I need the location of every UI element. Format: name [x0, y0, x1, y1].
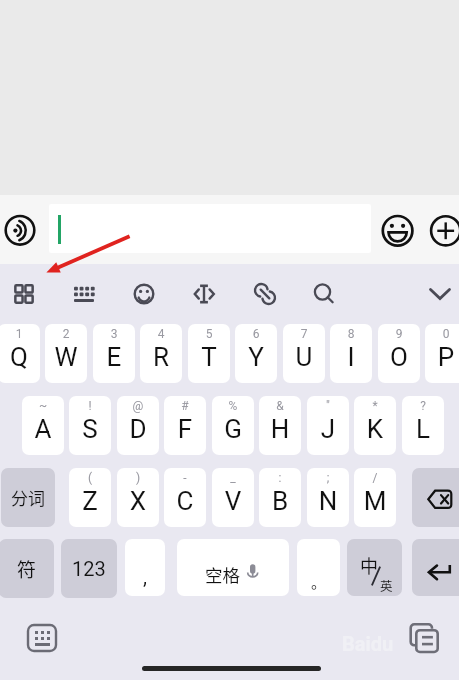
staticText: I	[330, 342, 372, 376]
button[interactable]: 6	[235, 324, 277, 383]
button[interactable]	[49, 204, 371, 253]
button[interactable]: &	[259, 396, 301, 455]
button[interactable]: Keyboard layouts	[4, 274, 44, 314]
staticText: C	[164, 486, 206, 520]
button[interactable]: Emoji	[379, 212, 417, 250]
staticText: R	[140, 342, 182, 376]
staticText: *	[354, 399, 396, 415]
button[interactable]: 中	[347, 539, 402, 596]
staticText: )	[117, 471, 159, 487]
staticText: ;	[307, 471, 349, 487]
staticText: L	[402, 414, 444, 448]
button[interactable]: Switch keyboard	[24, 621, 60, 655]
staticText: 4	[140, 327, 182, 343]
staticText: 5	[188, 327, 230, 343]
button[interactable]: 4	[140, 324, 182, 383]
staticText: (	[69, 471, 111, 487]
staticText: U	[283, 342, 325, 376]
staticText: Baidu	[342, 632, 394, 655]
staticText: &	[259, 399, 301, 415]
staticText: A	[22, 414, 64, 448]
staticText: 3	[93, 327, 135, 343]
staticText: N	[307, 486, 349, 520]
button[interactable]: 3	[93, 324, 135, 383]
button[interactable]: Emoticons	[124, 274, 164, 314]
staticText: 。	[311, 571, 327, 593]
button[interactable]: _	[212, 468, 254, 527]
button[interactable]: *	[354, 396, 396, 455]
staticText: 0	[425, 327, 459, 343]
button[interactable]: 1	[0, 324, 40, 383]
button[interactable]: %	[212, 396, 254, 455]
button[interactable]: Add	[427, 212, 459, 250]
button[interactable]: Enter	[412, 539, 459, 596]
button[interactable]: ~	[22, 396, 64, 455]
button[interactable]: (	[69, 468, 111, 527]
staticText: 6	[235, 327, 277, 343]
button[interactable]: Move cursor	[184, 274, 224, 314]
button[interactable]: 5	[188, 324, 230, 383]
staticText: :	[259, 471, 301, 487]
button[interactable]: 。	[297, 539, 340, 596]
button[interactable]: /	[354, 468, 396, 527]
button[interactable]: 0	[425, 324, 459, 383]
button[interactable]: 9	[378, 324, 420, 383]
staticText: D	[117, 414, 159, 448]
staticText: ?	[402, 399, 444, 415]
button[interactable]: :	[259, 468, 301, 527]
staticText: @	[117, 399, 159, 415]
button[interactable]: 8	[330, 324, 372, 383]
button[interactable]: )	[117, 468, 159, 527]
button[interactable]: !	[69, 396, 111, 455]
button[interactable]: 空格	[177, 539, 289, 596]
button[interactable]: #	[164, 396, 206, 455]
staticText: F	[164, 414, 206, 448]
staticText: W	[45, 342, 87, 376]
staticText: /	[354, 471, 396, 487]
staticText: ~	[22, 399, 64, 415]
button[interactable]: ;	[307, 468, 349, 527]
staticText: E	[93, 342, 135, 376]
staticText: 分词	[11, 485, 45, 510]
button[interactable]: 分词	[1, 468, 55, 527]
staticText: %	[212, 399, 254, 415]
staticText: -	[164, 471, 206, 487]
staticText: 8	[330, 327, 372, 343]
staticText: Z	[69, 486, 111, 520]
button[interactable]: ?	[402, 396, 444, 455]
button[interactable]: 123	[61, 539, 117, 598]
button[interactable]: Hide keyboard	[420, 274, 459, 314]
staticText: #	[164, 399, 206, 415]
staticText: T	[188, 342, 230, 376]
staticText: 中	[360, 552, 378, 578]
staticText: O	[378, 342, 420, 376]
staticText: 7	[283, 327, 325, 343]
button[interactable]: "	[307, 396, 349, 455]
button[interactable]: Clipboard	[406, 620, 442, 656]
button[interactable]: -	[164, 468, 206, 527]
button[interactable]: Link	[245, 274, 285, 314]
button[interactable]: Search	[304, 274, 344, 314]
staticText: B	[259, 486, 301, 520]
staticText: S	[69, 414, 111, 448]
button[interactable]: 2	[45, 324, 87, 383]
staticText: K	[354, 414, 396, 448]
staticText: _	[212, 471, 254, 487]
button[interactable]: 7	[283, 324, 325, 383]
staticText: 9	[378, 327, 420, 343]
staticText: "	[307, 399, 349, 415]
button[interactable]: @	[117, 396, 159, 455]
button[interactable]: Numeric keypad	[64, 273, 104, 313]
staticText: 英	[380, 576, 393, 594]
staticText: 符	[17, 555, 37, 583]
button[interactable]: Voice input	[2, 212, 38, 248]
button[interactable]: 符	[0, 539, 54, 598]
button[interactable]: Backspace	[412, 468, 459, 527]
staticText: J	[307, 414, 349, 448]
staticText: 1	[0, 327, 40, 343]
staticText: G	[212, 414, 254, 448]
staticText: X	[117, 486, 159, 520]
staticText: Y	[235, 342, 277, 376]
staticText: 空格	[205, 562, 240, 587]
button[interactable]: ,	[125, 539, 165, 596]
